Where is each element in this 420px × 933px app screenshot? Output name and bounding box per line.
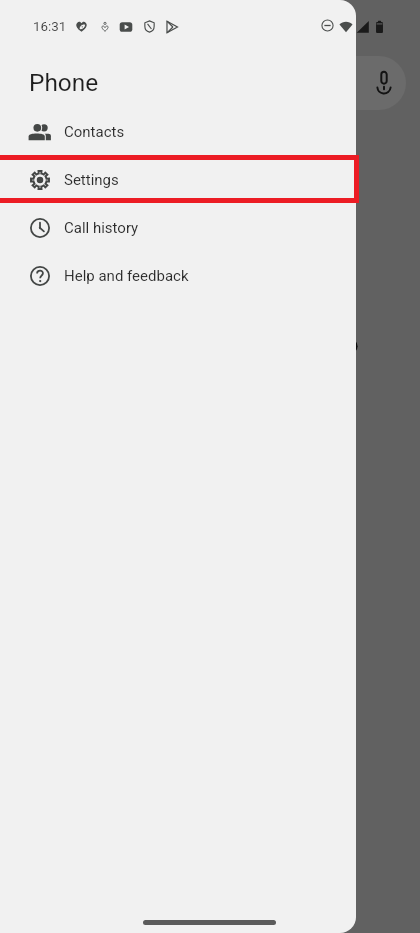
button[interactable]: Contacts: [0, 108, 356, 156]
staticText: Help and feedback: [64, 267, 189, 285]
button[interactable]: Settings: [0, 156, 356, 204]
button[interactable]: Voice search: [318, 56, 406, 110]
staticText: Call history: [64, 219, 139, 237]
staticText: Phone: [29, 68, 99, 97]
button[interactable]: Help and feedback: [0, 252, 356, 300]
staticText: 16:31: [33, 19, 67, 35]
button[interactable]: Call history: [0, 204, 356, 252]
staticText: Contacts: [64, 123, 125, 141]
staticText: Settings: [64, 171, 119, 189]
